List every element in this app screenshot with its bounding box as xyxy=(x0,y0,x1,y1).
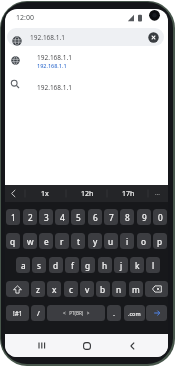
button[interactable]: 2 xyxy=(23,209,37,225)
button[interactable]: m xyxy=(129,281,143,297)
staticText: / xyxy=(37,308,40,318)
button[interactable]: v xyxy=(80,281,94,297)
staticText: k xyxy=(135,260,140,271)
button[interactable]: p xyxy=(153,233,167,249)
button[interactable]: 1x xyxy=(33,185,57,202)
staticText: e xyxy=(44,236,49,247)
button[interactable]: < PT(BR) > xyxy=(47,305,105,321)
button[interactable] xyxy=(78,337,96,354)
staticText: d xyxy=(53,260,59,271)
staticText: 1x xyxy=(41,189,49,199)
button[interactable]: 1 xyxy=(6,209,20,225)
button[interactable] xyxy=(145,281,168,297)
button[interactable]: z xyxy=(31,281,45,297)
button[interactable]: j xyxy=(114,257,128,273)
button[interactable]: h xyxy=(98,257,112,273)
button[interactable]: 192.168.1.1 xyxy=(5,78,168,100)
button[interactable]: w xyxy=(23,233,37,249)
staticText: x xyxy=(52,284,57,295)
staticText: 5 xyxy=(76,212,81,223)
button[interactable]: e xyxy=(39,233,53,249)
staticText: 192.168.1.1 xyxy=(30,33,65,42)
staticText: b xyxy=(100,284,106,295)
staticText: < PT(BR) > xyxy=(63,310,90,316)
button[interactable]: 6 xyxy=(88,209,102,225)
staticText: g xyxy=(85,260,91,271)
button[interactable]: !#1 xyxy=(6,305,29,321)
button[interactable] xyxy=(148,32,159,43)
button[interactable]: . xyxy=(107,305,121,321)
staticText: a xyxy=(21,260,26,271)
button[interactable]: ··· xyxy=(155,190,160,198)
button[interactable]: y xyxy=(88,233,102,249)
button[interactable]: / xyxy=(31,305,45,321)
button[interactable]: b xyxy=(96,281,110,297)
staticText: j xyxy=(120,260,123,271)
staticText: 12:00 xyxy=(16,13,34,23)
staticText: i xyxy=(126,236,129,247)
button[interactable]: 4 xyxy=(55,209,69,225)
staticText: h xyxy=(102,260,108,271)
staticText: y xyxy=(93,236,98,247)
staticText: 192.168.1.1 xyxy=(37,62,67,69)
button[interactable] xyxy=(9,189,18,198)
staticText: r xyxy=(60,236,64,247)
button[interactable]: 7 xyxy=(104,209,118,225)
staticText: 192.168.1.1 xyxy=(37,83,72,92)
staticText: p xyxy=(157,236,163,247)
button[interactable]: 5 xyxy=(71,209,85,225)
button[interactable]: d xyxy=(49,257,63,273)
staticText: 8 xyxy=(125,212,130,223)
button[interactable] xyxy=(6,281,29,297)
button[interactable]: g xyxy=(81,257,95,273)
staticText: 4 xyxy=(60,212,65,223)
button[interactable]: r xyxy=(55,233,69,249)
staticText: !#1 xyxy=(13,309,23,317)
button[interactable]: 0 xyxy=(153,209,167,225)
staticText: 0 xyxy=(158,212,163,223)
button[interactable]: x xyxy=(47,281,61,297)
button[interactable]: 8 xyxy=(120,209,134,225)
staticText: c xyxy=(69,284,73,295)
button[interactable] xyxy=(123,337,141,354)
button[interactable]: a xyxy=(16,257,30,273)
staticText: 3 xyxy=(44,212,49,223)
button[interactable]: q xyxy=(6,233,20,249)
button[interactable]: u xyxy=(104,233,118,249)
button[interactable]: s xyxy=(32,257,46,273)
button[interactable]: k xyxy=(130,257,144,273)
staticText: w xyxy=(27,236,34,247)
button[interactable] xyxy=(33,337,51,354)
staticText: .com xyxy=(128,310,141,317)
button[interactable]: 17h xyxy=(116,185,140,202)
staticText: f xyxy=(71,260,74,271)
staticText: . xyxy=(113,308,116,318)
button[interactable]: n xyxy=(112,281,126,297)
staticText: 192.168.1.1 xyxy=(37,53,72,62)
staticText: q xyxy=(10,236,16,247)
staticText: 12h xyxy=(81,189,94,199)
button[interactable]: 9 xyxy=(137,209,151,225)
staticText: 1 xyxy=(11,212,16,223)
button[interactable]: 12h xyxy=(75,185,99,202)
staticText: o xyxy=(141,236,147,247)
staticText: 9 xyxy=(142,212,147,223)
button[interactable]: 192.168.1.1 xyxy=(5,51,168,77)
button[interactable]: l xyxy=(146,257,160,273)
staticText: n xyxy=(116,284,122,295)
staticText: 17h xyxy=(122,189,135,199)
staticText: u xyxy=(108,236,114,247)
button[interactable]: f xyxy=(65,257,79,273)
button[interactable]: 3 xyxy=(39,209,53,225)
button[interactable]: o xyxy=(137,233,151,249)
button[interactable]: 192.168.1.1 xyxy=(7,28,164,46)
staticText: 2 xyxy=(28,212,33,223)
button[interactable]: i xyxy=(120,233,134,249)
button[interactable]: c xyxy=(64,281,78,297)
button[interactable]: t xyxy=(71,233,85,249)
staticText: z xyxy=(36,284,40,295)
staticText: v xyxy=(85,284,90,295)
button[interactable]: .com xyxy=(124,305,145,321)
button[interactable] xyxy=(146,305,167,321)
staticText: l xyxy=(152,260,155,271)
